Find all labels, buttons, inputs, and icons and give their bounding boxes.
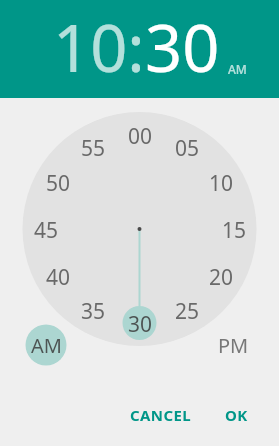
button[interactable]: 25 (163, 297, 211, 321)
button[interactable]: 10 (197, 169, 245, 193)
staticText: 15 (222, 216, 247, 240)
staticText: AM (31, 332, 62, 359)
button[interactable]: AM (24, 324, 68, 366)
button[interactable]: 35 (69, 297, 117, 321)
button[interactable]: CANCEL (117, 396, 205, 434)
button[interactable]: AM (228, 61, 247, 77)
button[interactable]: 30 (145, 3, 220, 92)
button[interactable]: 40 (34, 263, 82, 287)
staticText: 25 (175, 297, 200, 321)
staticText: OK (225, 405, 248, 425)
staticText: 10 (209, 169, 234, 193)
button[interactable]: 45 (22, 216, 70, 240)
staticText: 40 (46, 263, 71, 287)
button[interactable]: 55 (69, 134, 117, 158)
button[interactable]: 00 (116, 122, 164, 146)
staticText: PM (218, 332, 249, 359)
button[interactable]: 15 (210, 216, 258, 240)
button[interactable]: 30 (116, 310, 164, 334)
staticText: 45 (34, 216, 59, 240)
staticText: 55 (81, 134, 106, 158)
staticText: 00 (128, 122, 153, 146)
button[interactable]: PM (211, 324, 255, 366)
staticText: 20 (209, 263, 234, 287)
staticText: 50 (46, 169, 71, 193)
button[interactable]: 50 (34, 169, 82, 193)
staticText: 35 (81, 297, 106, 321)
staticText: CANCEL (130, 405, 192, 425)
button[interactable]: 10: (0, 0, 279, 98)
button[interactable]: 05 (163, 134, 211, 158)
button[interactable]: 10: (53, 3, 145, 92)
button[interactable]: OK (210, 396, 262, 434)
staticText: 05 (175, 134, 200, 158)
staticText: 30 (128, 310, 153, 334)
button[interactable]: 20 (197, 263, 245, 287)
